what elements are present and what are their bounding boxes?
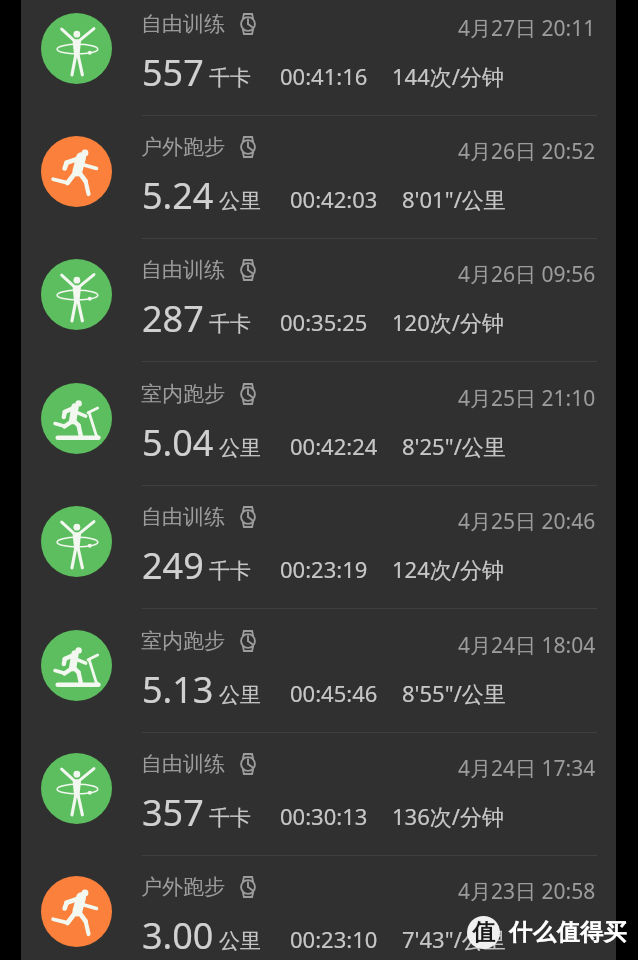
other: Watch source [237, 753, 259, 775]
staticText: 00:30:13 [280, 801, 368, 831]
button[interactable]: 自由训练 [21, 733, 616, 856]
staticText: 4月26日 20:52 [458, 137, 596, 166]
other: Watch source [237, 506, 259, 528]
button[interactable]: 户外跑步 [21, 856, 616, 960]
staticText: 4月24日 17:34 [458, 754, 596, 783]
staticText: 4月27日 20:11 [458, 14, 596, 43]
button[interactable]: 自由训练 [21, 486, 616, 609]
staticText: 3.00 [142, 911, 214, 960]
staticText: 自由训练 [141, 751, 225, 777]
staticText: 公里 [219, 928, 261, 954]
staticText: 00:23:10 [290, 924, 378, 954]
staticText: 5.24 [142, 171, 214, 220]
other: Watch source [237, 13, 259, 35]
staticText: 00:42:24 [290, 431, 378, 461]
button[interactable]: 室内跑步 [21, 610, 616, 733]
staticText: 4月24日 18:04 [458, 631, 596, 660]
staticText: 120次/分钟 [392, 307, 504, 337]
staticText: 千卡 [209, 558, 251, 584]
staticText: 4月25日 20:46 [458, 507, 596, 536]
staticText: 公里 [219, 188, 261, 214]
staticText: 00:23:19 [280, 554, 368, 584]
staticText: 00:45:46 [290, 678, 378, 708]
staticText: 357 [142, 788, 204, 837]
staticText: 557 [142, 48, 204, 97]
staticText: 144次/分钟 [392, 61, 504, 91]
other: Watch source [237, 876, 259, 898]
other: Watch source [237, 136, 259, 158]
staticText: 00:41:16 [280, 61, 368, 91]
button[interactable]: 自由训练 [21, 239, 616, 362]
button[interactable]: 室内跑步 [21, 363, 616, 486]
staticText: 124次/分钟 [392, 554, 504, 584]
staticText: 00:35:25 [280, 307, 368, 337]
staticText: 287 [142, 294, 204, 343]
staticText: 自由训练 [141, 257, 225, 283]
staticText: 户外跑步 [141, 134, 225, 160]
staticText: 5.13 [142, 665, 214, 714]
staticText: 自由训练 [141, 504, 225, 530]
staticText: 7'43"/公里 [402, 924, 506, 954]
staticText: 8'25"/公里 [402, 431, 506, 461]
staticText: 8'01"/公里 [402, 184, 506, 214]
staticText: 4月23日 20:58 [458, 877, 596, 906]
other: Watch source [237, 383, 259, 405]
staticText: 户外跑步 [141, 874, 225, 900]
staticText: 136次/分钟 [392, 801, 504, 831]
staticText: 公里 [219, 682, 261, 708]
staticText: 00:42:03 [290, 184, 378, 214]
other: Watch source [237, 630, 259, 652]
button[interactable]: 自由训练 [21, 0, 616, 116]
staticText: 8'55"/公里 [402, 678, 506, 708]
other: Watch source [237, 259, 259, 281]
button[interactable]: 户外跑步 [21, 116, 616, 239]
staticText: 5.04 [142, 418, 214, 467]
staticText: 4月25日 21:10 [458, 384, 596, 413]
staticText: 千卡 [209, 65, 251, 91]
staticText: 室内跑步 [141, 381, 225, 407]
staticText: 千卡 [209, 805, 251, 831]
staticText: 值 [472, 918, 495, 947]
staticText: 室内跑步 [141, 628, 225, 654]
staticText: 4月26日 09:56 [458, 260, 596, 289]
staticText: 公里 [219, 435, 261, 461]
staticText: 自由训练 [141, 11, 225, 37]
staticText: 249 [142, 541, 204, 590]
staticText: 千卡 [209, 311, 251, 337]
staticText: 什么值得买 [509, 918, 628, 947]
